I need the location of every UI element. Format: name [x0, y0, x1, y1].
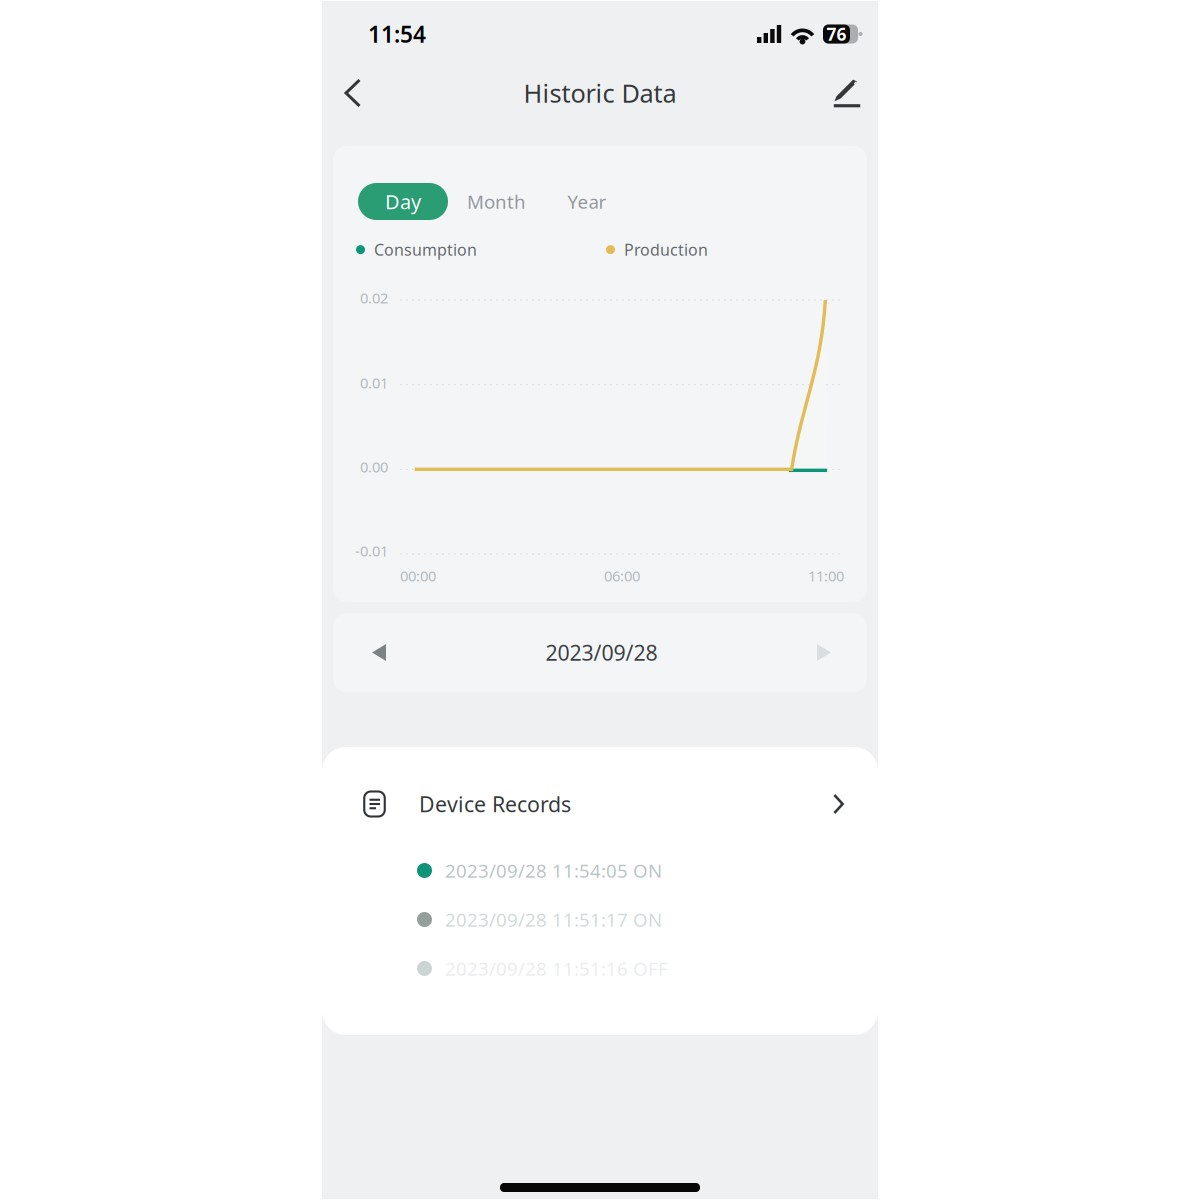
staticText: Production: [624, 239, 708, 260]
staticText: 2023/09/28: [545, 638, 657, 667]
staticText: 2023/09/28 11:51:16 OFF: [445, 956, 668, 981]
staticText: 06:00: [604, 566, 640, 585]
staticText: 2023/09/28 11:51:17 ON: [445, 907, 662, 932]
staticText: Historic Data: [523, 76, 676, 110]
staticText: Consumption: [374, 239, 477, 260]
button[interactable]: Previous day: [355, 628, 403, 676]
button[interactable]: Month: [448, 183, 545, 220]
staticText: 0.00: [360, 457, 388, 476]
staticText: 11:00: [808, 566, 844, 585]
staticText: Year: [567, 189, 606, 214]
button[interactable]: Day: [358, 183, 448, 220]
staticText: Device Records: [419, 790, 571, 818]
button[interactable]: Edit: [824, 70, 870, 116]
staticText: Day: [385, 188, 421, 215]
staticText: 76: [826, 22, 846, 45]
staticText: 2023/09/28 11:54:05 ON: [445, 858, 662, 883]
staticText: 0.01: [360, 373, 388, 392]
staticText: -0.01: [355, 541, 388, 560]
button[interactable]: Device Records: [322, 747, 878, 846]
staticText: Month: [467, 189, 526, 214]
staticText: 00:00: [400, 566, 436, 585]
button[interactable]: Year: [545, 183, 629, 220]
staticText: 11:54: [368, 19, 426, 49]
button[interactable]: Next day: [800, 628, 848, 676]
staticText: 0.02: [360, 288, 388, 307]
button[interactable]: Back: [329, 70, 375, 116]
